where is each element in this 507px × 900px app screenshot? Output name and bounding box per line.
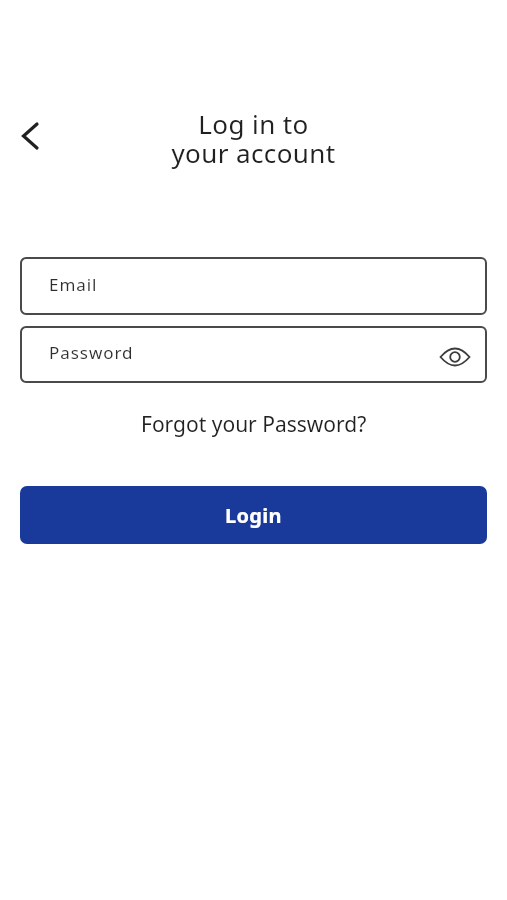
staticText: Log in to your account xyxy=(0,106,507,170)
staticText: Password xyxy=(49,341,134,364)
button[interactable]: Forgot your Password? xyxy=(141,410,367,439)
button[interactable]: Login xyxy=(20,486,487,544)
button[interactable]: Password xyxy=(20,326,487,383)
staticText: Email xyxy=(49,273,98,296)
button[interactable]: Email xyxy=(20,257,487,315)
staticText: Login xyxy=(225,502,282,529)
staticText: Forgot your Password? xyxy=(141,410,367,439)
button[interactable] xyxy=(10,118,50,154)
